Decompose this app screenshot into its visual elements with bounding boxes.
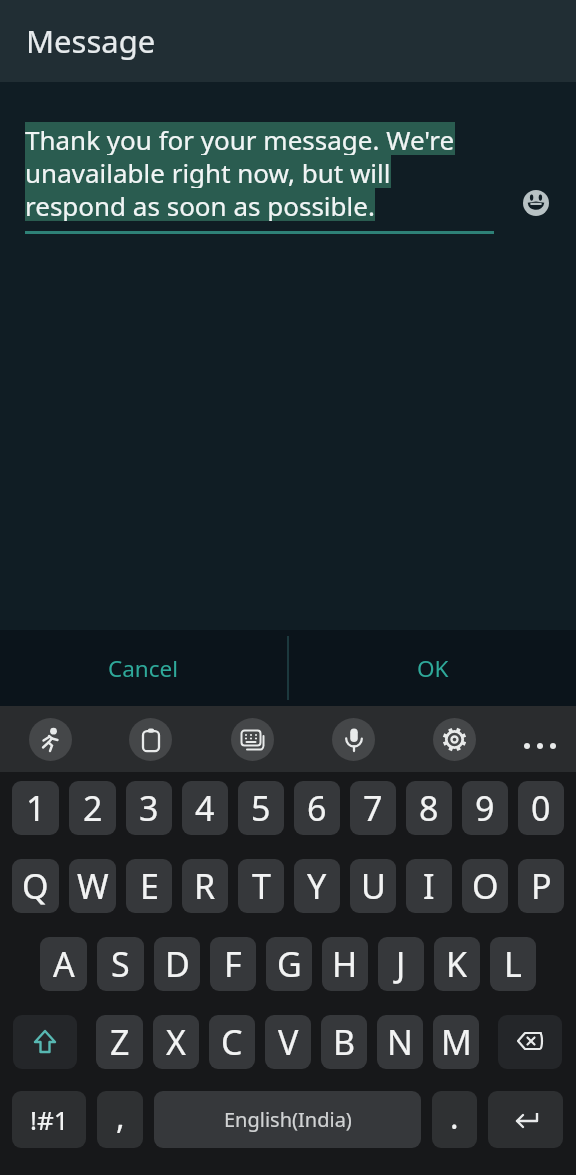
button[interactable]: .: [432, 1091, 477, 1148]
staticText: N: [387, 1019, 413, 1065]
button[interactable]: [488, 1091, 563, 1148]
staticText: Z: [110, 1019, 130, 1065]
button[interactable]: !#1: [12, 1091, 86, 1148]
staticText: 4: [195, 785, 215, 831]
staticText: L: [504, 941, 522, 987]
button[interactable]: Y: [294, 859, 340, 913]
button[interactable]: B: [321, 1015, 367, 1069]
staticText: 0: [531, 785, 551, 831]
staticText: U: [361, 863, 386, 909]
button[interactable]: 3: [126, 781, 172, 835]
button[interactable]: P: [518, 859, 564, 913]
button[interactable]: 5: [238, 781, 284, 835]
button[interactable]: S: [97, 937, 144, 991]
button[interactable]: H: [322, 937, 368, 991]
button[interactable]: A: [40, 937, 87, 991]
button[interactable]: R: [182, 859, 228, 913]
button[interactable]: English(India): [154, 1091, 421, 1148]
button[interactable]: V: [265, 1015, 311, 1069]
button[interactable]: 2: [69, 781, 116, 835]
button[interactable]: 1: [12, 781, 59, 835]
button[interactable]: L: [490, 937, 536, 991]
button[interactable]: D: [154, 937, 200, 991]
button[interactable]: Z: [96, 1015, 143, 1069]
staticText: Thank you for your message. We're: [25, 122, 455, 155]
button[interactable]: U: [350, 859, 396, 913]
button[interactable]: [13, 1015, 77, 1069]
button[interactable]: ,: [97, 1091, 143, 1148]
staticText: .: [450, 1095, 459, 1139]
staticText: T: [252, 863, 271, 909]
staticText: R: [194, 863, 216, 909]
staticText: A: [53, 941, 75, 987]
button[interactable]: 0: [518, 781, 564, 835]
staticText: unavailable right now, but will: [25, 155, 391, 188]
staticText: P: [531, 863, 552, 909]
staticText: F: [224, 941, 242, 987]
button[interactable]: W: [69, 859, 116, 913]
staticText: B: [333, 1019, 356, 1065]
staticText: 3: [139, 785, 159, 831]
staticText: I: [423, 863, 435, 909]
button[interactable]: T: [238, 859, 284, 913]
staticText: J: [396, 941, 406, 987]
button[interactable]: O: [462, 859, 508, 913]
staticText: 5: [251, 785, 271, 831]
button[interactable]: Q: [12, 859, 59, 913]
staticText: C: [221, 1019, 243, 1065]
staticText: 1: [26, 785, 46, 831]
button[interactable]: 8: [406, 781, 452, 835]
button[interactable]: K: [434, 937, 480, 991]
staticText: O: [472, 863, 499, 909]
staticText: V: [278, 1019, 299, 1065]
staticText: 7: [363, 785, 383, 831]
button[interactable]: F: [210, 937, 256, 991]
button[interactable]: 4: [182, 781, 228, 835]
staticText: M: [441, 1019, 472, 1065]
staticText: Cancel: [108, 653, 179, 684]
button[interactable]: N: [377, 1015, 423, 1069]
button[interactable]: [332, 718, 375, 761]
staticText: 2: [83, 785, 103, 831]
button[interactable]: 7: [350, 781, 396, 835]
staticText: respond as soon as possible.: [25, 188, 375, 221]
button[interactable]: M: [433, 1015, 479, 1069]
staticText: Message: [26, 20, 156, 62]
staticText: S: [111, 941, 130, 987]
button[interactable]: [231, 718, 274, 761]
button[interactable]: E: [126, 859, 172, 913]
button[interactable]: I: [406, 859, 452, 913]
button[interactable]: 6: [294, 781, 340, 835]
staticText: English(India): [224, 1106, 352, 1133]
staticText: OK: [417, 653, 449, 684]
staticText: 8: [419, 785, 439, 831]
button[interactable]: Cancel: [0, 630, 287, 706]
button[interactable]: [129, 718, 172, 761]
button[interactable]: G: [266, 937, 312, 991]
button[interactable]: [433, 718, 476, 761]
staticText: D: [165, 941, 190, 987]
button[interactable]: [516, 725, 564, 767]
button[interactable]: [498, 1015, 562, 1069]
staticText: K: [446, 941, 468, 987]
button[interactable]: C: [209, 1015, 255, 1069]
button[interactable]: [29, 718, 72, 761]
staticText: W: [77, 863, 109, 909]
staticText: H: [332, 941, 358, 987]
button[interactable]: OK: [289, 630, 576, 706]
staticText: Q: [22, 863, 49, 909]
staticText: E: [140, 863, 159, 909]
staticText: ,: [116, 1095, 125, 1139]
staticText: 6: [307, 785, 327, 831]
staticText: Y: [307, 863, 327, 909]
button[interactable]: J: [378, 937, 424, 991]
staticText: 9: [475, 785, 495, 831]
staticText: !#1: [30, 1102, 69, 1137]
staticText: X: [166, 1019, 186, 1065]
staticText: G: [277, 941, 302, 987]
button[interactable]: X: [153, 1015, 199, 1069]
button[interactable]: 9: [462, 781, 508, 835]
